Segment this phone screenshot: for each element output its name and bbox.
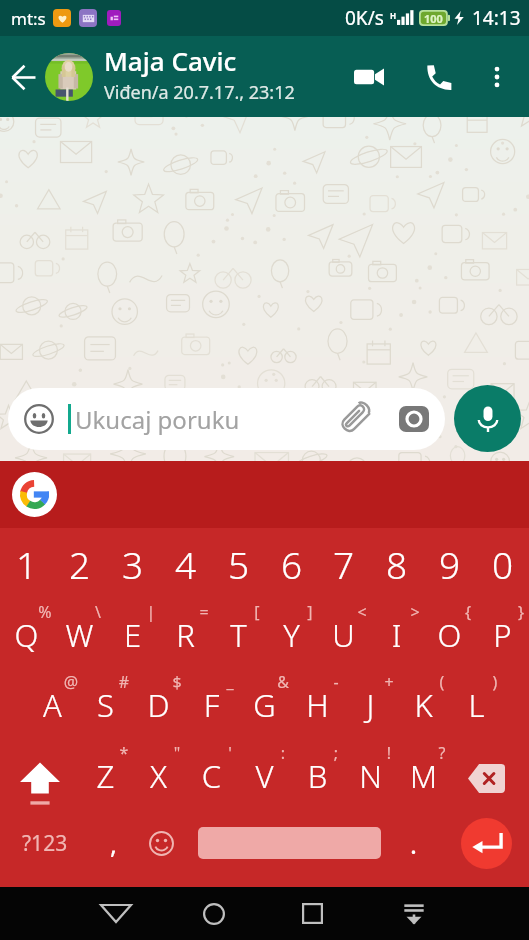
- button[interactable]: -: [291, 664, 344, 724]
- button[interactable]: Emoji: [138, 815, 184, 871]
- staticText: +: [379, 671, 399, 693]
- button[interactable]: $: [132, 664, 185, 724]
- staticText: V: [238, 755, 291, 797]
- staticText: 1: [0, 539, 53, 589]
- button[interactable]: @: [26, 664, 79, 724]
- button[interactable]: More options: [476, 56, 518, 98]
- button[interactable]: +: [344, 664, 397, 724]
- staticText: S: [79, 684, 132, 726]
- staticText: {: [458, 601, 478, 623]
- button[interactable]: 9: [423, 531, 476, 591]
- staticText: ;: [326, 742, 346, 764]
- button[interactable]: <: [317, 594, 370, 654]
- button[interactable]: ?123: [0, 815, 90, 871]
- button[interactable]: ,: [90, 815, 136, 871]
- button[interactable]: [: [212, 594, 265, 654]
- staticText: ?123: [22, 829, 68, 858]
- button[interactable]: .: [390, 815, 436, 871]
- staticText: O: [423, 614, 476, 656]
- staticText: Z: [79, 755, 132, 797]
- button[interactable]: >: [370, 594, 423, 654]
- button[interactable]: ?: [397, 735, 450, 795]
- button[interactable]: 7: [317, 531, 370, 591]
- button[interactable]: ]: [265, 594, 318, 654]
- button[interactable]: Video call: [342, 50, 396, 104]
- staticText: @: [61, 671, 81, 693]
- button[interactable]: Call: [414, 52, 464, 102]
- button[interactable]: Back: [92, 887, 140, 940]
- staticText: \: [88, 601, 108, 623]
- staticText: H: [291, 684, 344, 726]
- button[interactable]: 0: [476, 531, 529, 591]
- button[interactable]: Hide keyboard: [390, 887, 438, 940]
- staticText: -: [326, 671, 346, 693]
- button[interactable]: {: [423, 594, 476, 654]
- staticText: E: [106, 614, 159, 656]
- button[interactable]: 3: [106, 531, 159, 591]
- staticText: I: [370, 614, 423, 656]
- staticText: _: [220, 671, 240, 693]
- button[interactable]: 4: [159, 531, 212, 591]
- staticText: 5: [212, 539, 265, 589]
- staticText: &: [273, 671, 293, 693]
- staticText: ": [167, 742, 187, 764]
- staticText: M: [397, 755, 450, 797]
- button[interactable]: |: [106, 594, 159, 654]
- button[interactable]: Ukucaj poruku: [8, 388, 445, 450]
- staticText: W: [53, 614, 106, 656]
- button[interactable]: #: [79, 664, 132, 724]
- staticText: #: [114, 671, 134, 693]
- staticText: D: [132, 684, 185, 726]
- button[interactable]: Backspace: [447, 748, 526, 808]
- button[interactable]: Google search: [12, 472, 57, 517]
- button[interactable]: Space: [198, 827, 381, 859]
- staticText: 0: [476, 539, 529, 589]
- button[interactable]: 5: [212, 531, 265, 591]
- staticText: 100: [424, 11, 443, 26]
- staticText: F: [185, 684, 238, 726]
- button[interactable]: &: [238, 664, 291, 724]
- staticText: (: [432, 671, 452, 693]
- button[interactable]: %: [0, 594, 53, 654]
- staticText: 3: [106, 539, 159, 589]
- button[interactable]: (: [397, 664, 450, 724]
- staticText: C: [185, 755, 238, 797]
- staticText: L: [450, 684, 503, 726]
- button[interactable]: :: [238, 735, 291, 795]
- button[interactable]: =: [159, 594, 212, 654]
- staticText: 8: [370, 539, 423, 589]
- staticText: H: [390, 10, 397, 21]
- staticText: }: [511, 601, 529, 623]
- staticText: Maja Cavic: [104, 43, 237, 78]
- button[interactable]: *: [79, 735, 132, 795]
- staticText: 2: [53, 539, 106, 589]
- button[interactable]: \: [53, 594, 106, 654]
- button[interactable]: Recent apps: [288, 887, 336, 940]
- staticText: P: [476, 614, 529, 656]
- button[interactable]: Voice message: [454, 385, 521, 452]
- staticText: Q: [0, 614, 53, 656]
- button[interactable]: 2: [53, 531, 106, 591]
- button[interactable]: ;: [291, 735, 344, 795]
- button[interactable]: Back: [2, 56, 44, 98]
- staticText: A: [26, 684, 79, 726]
- button[interactable]: ': [185, 735, 238, 795]
- button[interactable]: ): [450, 664, 503, 724]
- button[interactable]: 1: [0, 531, 53, 591]
- staticText: 9: [423, 539, 476, 589]
- button[interactable]: Enter: [461, 818, 512, 869]
- button[interactable]: !: [344, 735, 397, 795]
- staticText: G: [238, 684, 291, 726]
- staticText: $: [167, 671, 187, 693]
- staticText: .: [410, 826, 417, 861]
- button[interactable]: _: [185, 664, 238, 724]
- button[interactable]: Shift: [0, 754, 79, 814]
- button[interactable]: 6: [265, 531, 318, 591]
- button[interactable]: ": [132, 735, 185, 795]
- staticText: R: [159, 614, 212, 656]
- staticText: 6: [265, 539, 318, 589]
- button[interactable]: Home: [190, 887, 238, 940]
- button[interactable]: 8: [370, 531, 423, 591]
- button[interactable]: }: [476, 594, 529, 654]
- staticText: ]: [300, 601, 320, 623]
